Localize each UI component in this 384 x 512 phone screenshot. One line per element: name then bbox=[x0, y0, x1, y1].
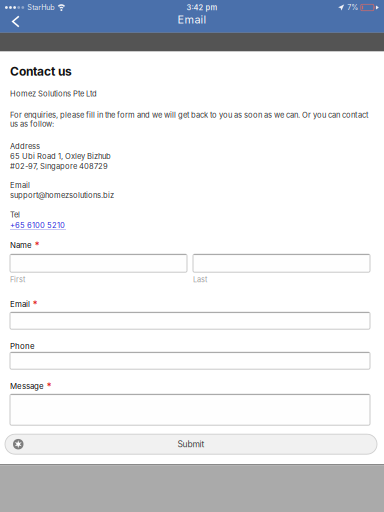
staticText: Email bbox=[177, 13, 206, 26]
staticText: First bbox=[10, 275, 25, 284]
staticText: Email bbox=[10, 181, 30, 190]
staticText: support@homezsolutions.biz bbox=[10, 191, 114, 200]
staticText: Submit bbox=[177, 439, 204, 449]
staticText: For enquiries, please fill in the form a… bbox=[10, 110, 368, 129]
staticText: Email bbox=[10, 299, 30, 309]
staticText: * bbox=[35, 239, 40, 251]
staticText: Address bbox=[10, 142, 40, 151]
button[interactable]: Submit bbox=[0, 434, 384, 454]
button[interactable]: +65 6100 5210 bbox=[10, 221, 370, 230]
staticText: * bbox=[33, 298, 38, 310]
staticText: Phone bbox=[10, 341, 35, 351]
staticText: Last bbox=[193, 275, 207, 284]
staticText: Tel bbox=[10, 210, 20, 219]
staticText: Name bbox=[10, 240, 32, 250]
button[interactable]: Back bbox=[0, 14, 30, 32]
staticText: Message bbox=[10, 381, 44, 391]
staticText: StarHub bbox=[27, 3, 54, 12]
staticText: 3:42 pm bbox=[186, 3, 217, 12]
staticText: 65 Ubi Road 1, Oxley Bizhub bbox=[10, 152, 111, 161]
staticText: #02-97, Singapore 408729 bbox=[10, 162, 108, 171]
staticText: 7% bbox=[347, 3, 358, 12]
staticText: Contact us bbox=[10, 64, 72, 78]
staticText: +65 6100 5210 bbox=[10, 221, 65, 230]
staticText: Homez Solutions Pte Ltd bbox=[10, 89, 97, 98]
staticText: * bbox=[47, 380, 52, 392]
